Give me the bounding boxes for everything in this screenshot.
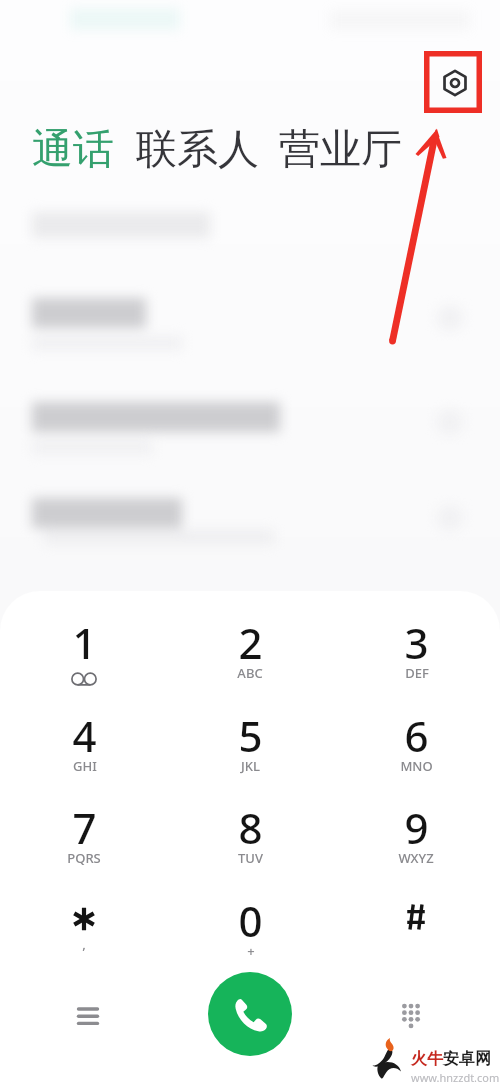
staticText: WXYZ [398,849,434,867]
staticText: www.hnzzdt.com [411,1070,500,1084]
staticText: 营业厅 [279,124,402,176]
staticText: , [82,935,86,953]
button[interactable]: 2 [195,614,305,700]
button[interactable]: 营业厅 [279,124,402,176]
button[interactable]: 1 [29,614,139,700]
button[interactable]: 8 [195,799,305,885]
staticText: 火牛 [411,1049,443,1069]
button[interactable]: 5 [195,707,305,793]
staticText: 3 [404,614,429,671]
button[interactable]: 3 [361,614,471,700]
button[interactable]: 7 [29,799,139,885]
staticText: ABC [237,664,263,682]
staticText: 通话 [32,124,114,176]
button[interactable]: Call [208,972,292,1056]
button[interactable]: 联系人 [136,124,259,176]
button[interactable]: , [29,892,139,978]
staticText: 8 [238,799,263,856]
staticText: TUV [238,849,263,867]
staticText: PQRS [67,849,101,867]
staticText: 6 [404,707,429,764]
staticText: 1 [72,614,97,671]
staticText: 2 [238,614,263,671]
staticText: 5 [238,707,263,764]
button[interactable]: Settings [434,62,476,104]
button[interactable]: Call log [60,988,116,1044]
button[interactable]: 0 [195,892,305,978]
button[interactable]: 9 [361,799,471,885]
staticText: + [247,942,255,960]
button[interactable] [361,892,471,978]
staticText: 安卓网 [443,1049,491,1069]
staticText: 4 [72,707,97,764]
button[interactable]: 通话 [32,124,114,176]
button[interactable]: 4 [29,707,139,793]
button[interactable]: Keypad [383,988,439,1044]
staticText: 7 [72,799,97,856]
staticText: GHI [73,757,97,775]
staticText: 9 [404,799,429,856]
button[interactable]: 6 [361,707,471,793]
staticText: MNO [400,757,433,775]
staticText: JKL [241,757,260,775]
staticText: 联系人 [136,124,259,176]
staticText: 0 [238,892,263,949]
staticText: DEF [405,664,429,682]
